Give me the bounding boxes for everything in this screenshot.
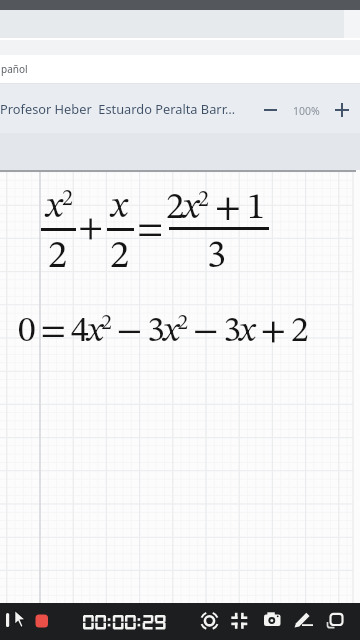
button[interactable] [262,102,278,118]
staticText: + [78,211,104,246]
staticText: = [137,212,164,249]
button[interactable] [33,612,50,630]
staticText: 0 = 4x2 − 3x2 − 3x + 2 [18,313,307,349]
staticText: 3 [207,238,227,277]
staticText: 100% [293,104,320,118]
staticText: 2x2 + 1 [166,189,264,226]
staticText: Profesor Heber Estuardo Peralta Barr… [0,100,236,117]
staticText: x2 [46,188,73,225]
staticText: 2 [48,238,68,277]
button[interactable] [291,609,315,633]
button[interactable] [322,609,346,633]
button[interactable]: Profesor Heber Estuardo Peralta Barr… [0,84,360,133]
staticText: pañol [1,62,28,76]
button[interactable] [3,609,29,635]
staticText: 2 [110,238,130,277]
button[interactable] [334,102,350,118]
button[interactable] [227,609,251,633]
staticText: x [111,189,128,226]
button[interactable] [259,609,283,633]
button[interactable] [198,609,222,633]
